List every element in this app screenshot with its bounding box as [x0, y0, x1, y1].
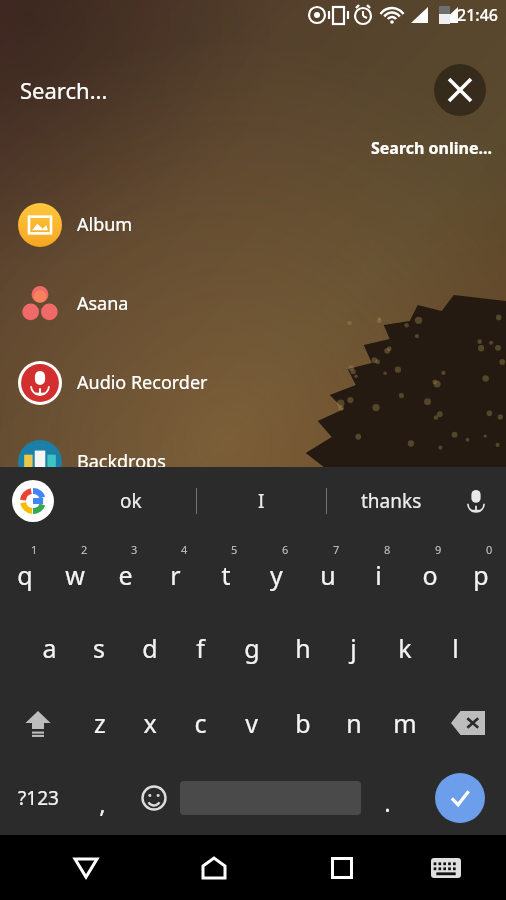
button[interactable]: c	[175, 685, 226, 760]
staticText: thanks	[361, 488, 422, 514]
button[interactable]: Backdrops	[0, 422, 506, 501]
button[interactable]: ok	[66, 467, 196, 535]
staticText: 0	[486, 542, 493, 557]
button[interactable]: Voice input	[456, 481, 496, 521]
staticText: k	[398, 631, 412, 665]
button[interactable]: Back	[45, 835, 126, 900]
button[interactable]: m	[379, 685, 430, 760]
staticText: p	[473, 558, 489, 592]
button[interactable]: Home	[174, 835, 254, 900]
staticText: d	[142, 631, 158, 665]
staticText: 2	[81, 542, 88, 557]
button[interactable]: f	[175, 610, 226, 685]
button[interactable]: n	[328, 685, 379, 760]
staticText: s	[93, 631, 105, 665]
staticText: i	[375, 558, 382, 592]
button[interactable]: h	[277, 610, 328, 685]
staticText: n	[346, 706, 362, 740]
button[interactable]: j	[328, 610, 379, 685]
staticText: j	[350, 631, 357, 665]
staticText: x	[143, 706, 157, 740]
staticText: u	[320, 558, 336, 592]
button[interactable]: 4	[150, 535, 200, 610]
staticText: 8	[384, 542, 391, 557]
button[interactable]: ,	[76, 760, 128, 835]
button[interactable]: Google	[12, 480, 54, 522]
staticText: m	[393, 706, 417, 740]
button[interactable]: ?123	[0, 760, 76, 835]
staticText: 9	[435, 542, 442, 557]
button[interactable]: s	[74, 610, 124, 685]
staticText: y	[270, 558, 283, 592]
staticText: Backdrops	[77, 449, 166, 474]
button[interactable]: Recents	[302, 835, 382, 900]
button[interactable]: Asana	[0, 264, 506, 343]
staticText: o	[422, 558, 438, 592]
staticText: f	[196, 631, 205, 665]
staticText: Asana	[77, 291, 129, 316]
staticText: ?123	[18, 785, 59, 811]
staticText: a	[42, 631, 57, 665]
button[interactable]: 8	[353, 535, 404, 610]
staticText: ok	[120, 488, 142, 514]
button[interactable]: .	[361, 760, 413, 835]
staticText: 5	[231, 542, 238, 557]
staticText: ,	[99, 787, 106, 820]
staticText: 6	[282, 542, 289, 557]
button[interactable]: Enter	[413, 760, 506, 835]
button[interactable]: 1	[0, 535, 50, 610]
staticText: t	[221, 558, 231, 592]
button[interactable]: z	[75, 685, 125, 760]
staticText: Search online...	[371, 137, 492, 159]
staticText: l	[452, 631, 459, 665]
staticText: h	[295, 631, 311, 665]
button[interactable]: g	[226, 610, 277, 685]
button[interactable]: a	[24, 610, 74, 685]
button[interactable]: Audio Recorder	[0, 343, 506, 422]
staticText: Search...	[20, 75, 108, 105]
button[interactable]: x	[125, 685, 175, 760]
staticText: c	[194, 706, 207, 740]
staticText: Audio Recorder	[77, 370, 208, 395]
staticText: 1	[31, 542, 38, 557]
button[interactable]: Clear search	[434, 64, 486, 116]
button[interactable]: 5	[200, 535, 251, 610]
button[interactable]: v	[226, 685, 277, 760]
button[interactable]: k	[379, 610, 430, 685]
button[interactable]: d	[124, 610, 175, 685]
button[interactable]: b	[277, 685, 328, 760]
staticText: 3	[131, 542, 138, 557]
staticText: 4	[181, 542, 188, 557]
button[interactable]: Space	[180, 760, 361, 835]
button[interactable]: 3	[100, 535, 150, 610]
button[interactable]: Emoji	[128, 760, 180, 835]
staticText: w	[65, 558, 85, 592]
staticText: I	[258, 488, 265, 514]
button[interactable]: 6	[251, 535, 302, 610]
button[interactable]: 2	[50, 535, 100, 610]
staticText: g	[244, 631, 260, 665]
button[interactable]: Search online...	[357, 133, 506, 163]
button[interactable]: 7	[302, 535, 353, 610]
button[interactable]: 0	[455, 535, 506, 610]
button[interactable]: I	[197, 467, 326, 535]
button[interactable]: Shift	[0, 685, 75, 760]
button[interactable]: Backspace	[430, 685, 506, 760]
staticText: e	[118, 558, 133, 592]
button[interactable]: 9	[404, 535, 455, 610]
staticText: b	[295, 706, 311, 740]
staticText: Album	[77, 212, 133, 237]
button[interactable]: l	[430, 610, 481, 685]
staticText: .	[384, 786, 391, 819]
button[interactable]: Album	[0, 185, 506, 264]
staticText: z	[94, 706, 106, 740]
staticText: 7	[333, 542, 340, 557]
staticText: q	[17, 558, 33, 592]
button[interactable]: thanks	[327, 467, 456, 535]
staticText: v	[245, 706, 258, 740]
staticText: 21:46	[457, 4, 498, 26]
button[interactable]: Hide keyboard	[406, 835, 486, 900]
staticText: r	[170, 558, 181, 592]
